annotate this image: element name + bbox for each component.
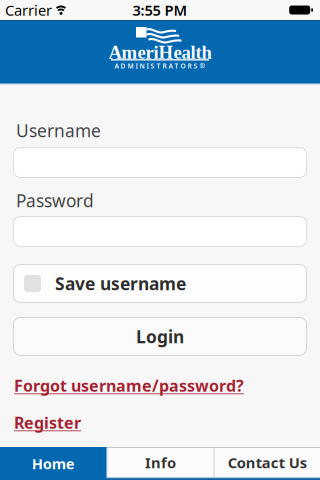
staticText: AmeriHealth	[108, 42, 211, 63]
staticText: 3:55 PM	[132, 0, 187, 20]
staticText: Forgot username/password?	[14, 375, 244, 396]
staticText: Contact Us	[228, 453, 307, 472]
staticText: Password	[16, 189, 94, 212]
staticText: Register	[14, 412, 81, 433]
button[interactable]: Contact Us	[214, 448, 320, 477]
button[interactable]: Save username	[13, 264, 307, 303]
staticText: Carrier	[5, 0, 52, 20]
button[interactable]: Register	[14, 412, 81, 433]
staticText: Login	[136, 325, 184, 348]
staticText: Info	[145, 453, 176, 472]
staticText: A D M I N I S T R A T O R S ®	[114, 62, 205, 70]
button[interactable]: Info	[107, 448, 213, 477]
staticText: Username	[16, 119, 101, 142]
button[interactable]: Forgot username/password?	[14, 375, 244, 396]
staticText: Home	[32, 454, 75, 473]
button[interactable]: Home	[0, 447, 106, 480]
button[interactable]: Login	[13, 317, 307, 356]
staticText: Save username	[55, 272, 186, 295]
